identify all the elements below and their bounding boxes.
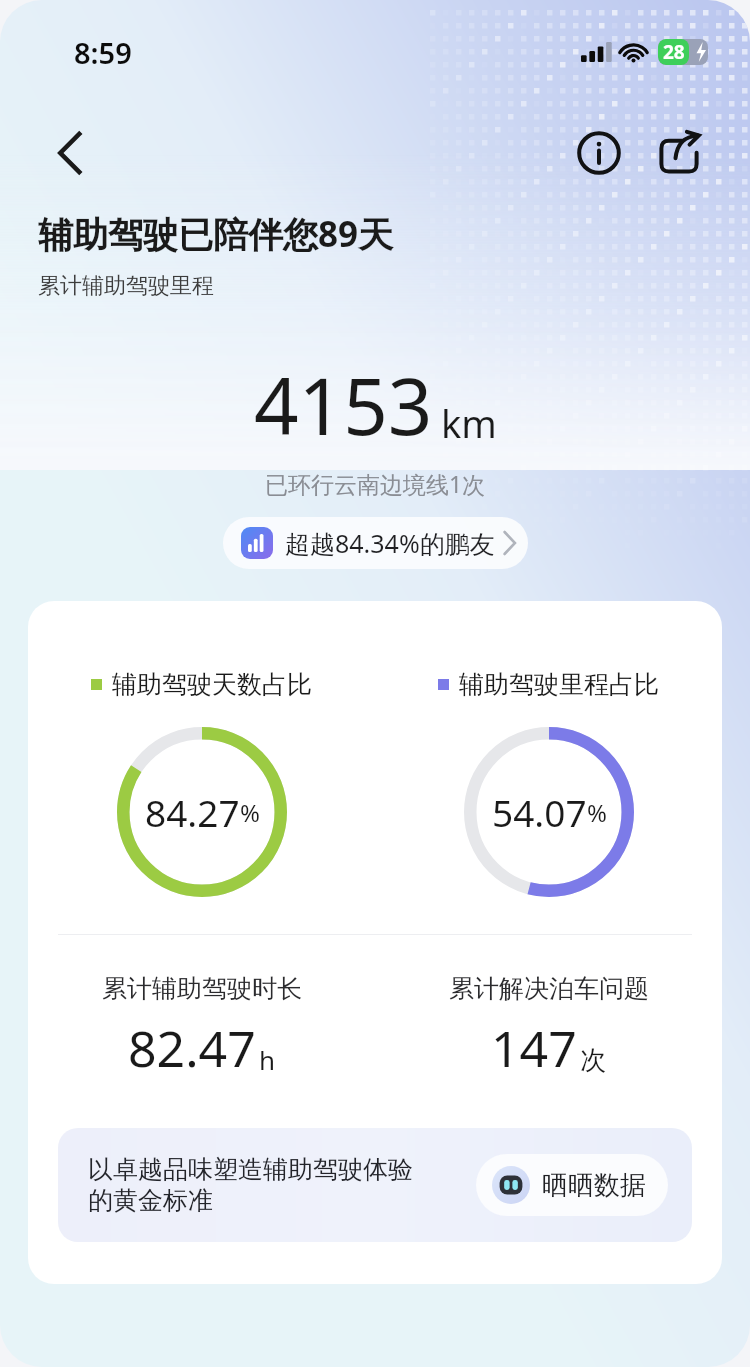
staticText: 辅助驾驶天数占比 xyxy=(112,669,312,700)
staticText: 超越84.34%的鹏友 xyxy=(285,526,495,560)
staticText: h xyxy=(259,1042,276,1077)
staticText: 8:59 xyxy=(74,33,132,72)
staticText: 已环行云南边境线1次 xyxy=(0,468,750,499)
button[interactable]: 超越84.34%的鹏友 xyxy=(223,517,528,569)
button[interactable]: Back xyxy=(42,125,98,181)
staticText: 辅助驾驶里程占比 xyxy=(459,669,659,700)
staticText: 28 xyxy=(663,39,685,65)
staticText: 147 xyxy=(491,1014,577,1082)
staticText: 辅助驾驶已陪伴您89天 xyxy=(38,210,394,258)
staticText: % xyxy=(240,796,260,829)
staticText: 以卓越品味塑造辅助驾驶体验 xyxy=(88,1154,413,1185)
staticText: 84.27 xyxy=(145,787,240,837)
button[interactable]: Information xyxy=(572,126,626,180)
staticText: 54.07 xyxy=(492,787,587,837)
button[interactable]: Share xyxy=(652,126,706,180)
staticText: 4153 xyxy=(254,352,433,458)
staticText: 的黄金标准 xyxy=(88,1185,213,1216)
button[interactable]: 晒晒数据 xyxy=(476,1154,668,1216)
staticText: 累计辅助驾驶时长 xyxy=(102,973,302,1004)
staticText: 82.47 xyxy=(128,1014,256,1082)
staticText: 晒晒数据 xyxy=(542,1169,646,1202)
staticText: 累计解决泊车问题 xyxy=(449,973,649,1004)
staticText: 次 xyxy=(580,1044,606,1077)
staticText: 累计辅助驾驶里程 xyxy=(38,272,214,300)
staticText: km xyxy=(441,397,497,449)
staticText: % xyxy=(587,796,607,829)
